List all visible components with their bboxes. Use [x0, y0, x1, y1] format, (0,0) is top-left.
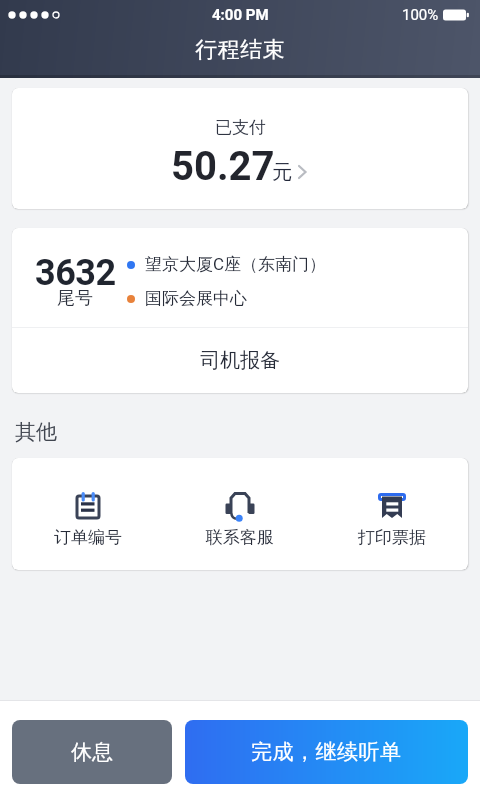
staticText: 已支付	[215, 117, 266, 138]
staticText: 国际会展中心	[145, 288, 247, 309]
button[interactable]: 休息	[12, 720, 172, 784]
staticText: 打印票据	[358, 527, 426, 548]
staticText: 3632	[35, 252, 116, 294]
staticText: 行程结束	[195, 36, 285, 64]
button[interactable]: 已支付	[12, 88, 468, 209]
staticText: 休息	[71, 739, 113, 765]
button[interactable]: 司机报备	[12, 328, 468, 393]
staticText: 联系客服	[206, 527, 274, 548]
staticText: 4:00 PM	[212, 6, 269, 24]
button[interactable]: 完成，继续听单	[185, 720, 468, 784]
staticText: 100%	[402, 6, 439, 24]
staticText: 订单编号	[54, 527, 122, 548]
staticText: 元	[272, 160, 292, 185]
staticText: 尾号	[57, 287, 93, 310]
button[interactable]: 打印票据	[316, 458, 468, 570]
button[interactable]: 联系客服	[164, 458, 316, 570]
staticText: 司机报备	[200, 348, 280, 373]
staticText: 完成，继续听单	[251, 739, 402, 765]
staticText: 望京大厦C座（东南门）	[145, 254, 327, 275]
staticText: 50.27	[171, 143, 275, 190]
staticText: 其他	[15, 419, 57, 445]
button[interactable]: 订单编号	[12, 458, 164, 570]
